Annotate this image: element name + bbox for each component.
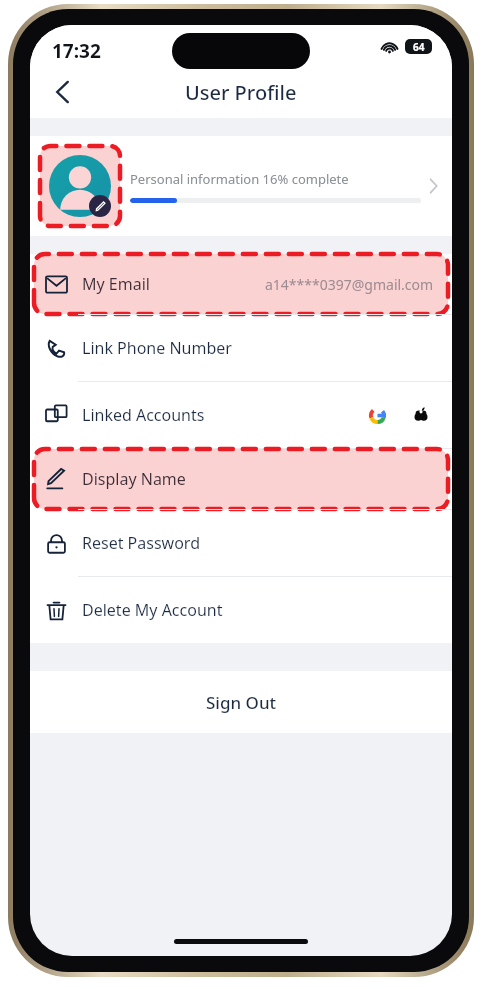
button[interactable]: Personal information 16% complete [30, 136, 452, 236]
button[interactable]: Back [40, 70, 84, 114]
button[interactable]: Reset Password [30, 510, 452, 576]
button[interactable]: Sign Out [30, 671, 452, 733]
staticText: 17:32 [52, 38, 101, 64]
button[interactable]: Linked Accounts [30, 382, 452, 448]
staticText: Reset Password [82, 532, 200, 554]
button[interactable]: Display Name [30, 449, 452, 509]
staticText: My Email [82, 273, 150, 295]
staticText: a14****0397@gmail.com [265, 275, 434, 294]
staticText: Linked Accounts [82, 404, 205, 426]
staticText: Display Name [82, 468, 186, 490]
staticText: User Profile [185, 79, 297, 106]
button[interactable]: Link Phone Number [30, 315, 452, 381]
staticText: Sign Out [206, 691, 277, 714]
button[interactable]: My Email [30, 254, 452, 314]
staticText: 64 [413, 40, 425, 54]
button[interactable]: Delete My Account [30, 577, 452, 643]
staticText: Link Phone Number [82, 337, 232, 359]
staticText: Personal information 16% complete [130, 170, 349, 188]
staticText: Delete My Account [82, 599, 223, 621]
